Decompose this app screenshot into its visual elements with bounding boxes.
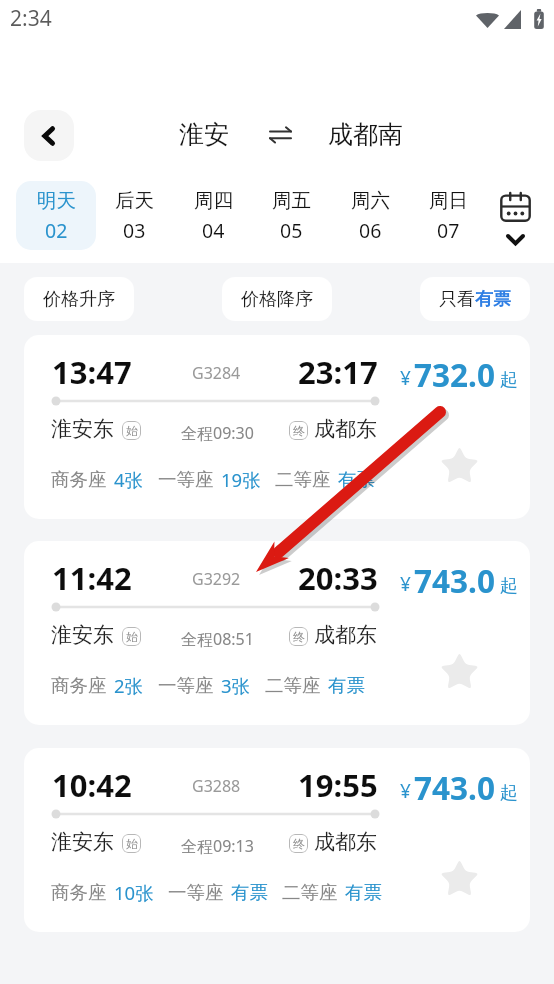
staticText: 淮安东 (51, 829, 114, 855)
staticText: 后天 (115, 188, 154, 213)
staticText: 06 (359, 217, 382, 244)
staticText: 淮安 (179, 119, 229, 150)
staticText: 04 (202, 217, 225, 244)
staticText: 一等座 (168, 881, 224, 904)
staticText: 明天 (37, 188, 76, 213)
staticText: 起 (500, 575, 518, 598)
staticText: 始 (126, 423, 138, 438)
staticText: 只看有票 (439, 288, 511, 311)
button[interactable]: 明天 (16, 181, 96, 250)
button[interactable]: Back (24, 110, 74, 161)
staticText: 一等座 (158, 674, 214, 697)
staticText: 有票 (231, 881, 268, 904)
staticText: 10:42 (52, 764, 132, 806)
staticText: 13:47 (52, 351, 132, 393)
staticText: ¥ (400, 778, 411, 804)
button[interactable]: 周日 (408, 181, 488, 250)
staticText: 淮安东 (51, 416, 114, 442)
staticText: 淮安东 (51, 622, 114, 648)
staticText: 二等座 (282, 881, 338, 904)
staticText: G3288 (192, 775, 241, 797)
staticText: 始 (126, 629, 138, 644)
staticText: 成都东 (314, 829, 377, 855)
staticText: 终 (293, 423, 305, 438)
button[interactable]: 价格降序 (222, 277, 332, 321)
staticText: 终 (293, 836, 305, 851)
staticText: 2张 (114, 673, 144, 698)
button[interactable]: 价格升序 (24, 277, 134, 321)
staticText: 终 (293, 629, 305, 644)
staticText: 成都南 (328, 119, 403, 150)
staticText: 20:33 (298, 557, 378, 599)
staticText: 价格降序 (241, 288, 313, 311)
button[interactable]: 13:47 (24, 335, 530, 519)
staticText: 743.0 (414, 766, 495, 809)
staticText: 2:34 (10, 4, 52, 33)
staticText: G3292 (192, 568, 241, 590)
button[interactable]: 10:42 (24, 748, 530, 932)
staticText: 19张 (221, 467, 261, 492)
staticText: 起 (500, 782, 518, 805)
staticText: 有票 (345, 881, 382, 904)
staticText: 一等座 (158, 468, 214, 491)
staticText: 周四 (194, 188, 233, 213)
staticText: 始 (126, 836, 138, 851)
staticText: 11:42 (52, 557, 132, 599)
button[interactable]: 周六 (330, 181, 410, 250)
staticText: 03 (123, 217, 146, 244)
staticText: 4张 (114, 467, 144, 492)
staticText: 周六 (351, 188, 390, 213)
staticText: 成都东 (314, 622, 377, 648)
staticText: 07 (437, 217, 460, 244)
staticText: 19:55 (298, 764, 378, 806)
staticText: 商务座 (51, 674, 107, 697)
staticText: 3张 (221, 673, 251, 698)
button[interactable]: 11:42 (24, 541, 530, 725)
staticText: 有票 (328, 674, 365, 697)
staticText: 05 (280, 217, 303, 244)
staticText: 成都东 (314, 416, 377, 442)
staticText: ¥ (400, 571, 411, 597)
staticText: 全程08:51 (181, 628, 254, 650)
staticText: 有票 (338, 468, 375, 491)
staticText: 全程09:30 (181, 422, 254, 444)
button[interactable]: 周四 (173, 181, 253, 250)
button[interactable]: 周五 (251, 181, 331, 250)
button[interactable]: Open calendar (476, 175, 554, 263)
staticText: 10张 (114, 880, 154, 905)
staticText: 周日 (429, 188, 468, 213)
staticText: ¥ (400, 365, 411, 391)
staticText: 02 (45, 217, 68, 244)
staticText: 商务座 (51, 468, 107, 491)
staticText: 起 (500, 369, 518, 392)
staticText: 商务座 (51, 881, 107, 904)
staticText: 743.0 (414, 559, 495, 602)
staticText: 全程09:13 (181, 835, 254, 857)
staticText: 价格升序 (43, 288, 115, 311)
staticText: 二等座 (265, 674, 321, 697)
button[interactable]: 只看有票 (420, 277, 530, 321)
button[interactable]: 后天 (94, 181, 174, 250)
staticText: 周五 (272, 188, 311, 213)
staticText: 23:17 (298, 351, 378, 393)
staticText: G3284 (192, 362, 241, 384)
staticText: 732.0 (414, 353, 495, 396)
staticText: 二等座 (275, 468, 331, 491)
